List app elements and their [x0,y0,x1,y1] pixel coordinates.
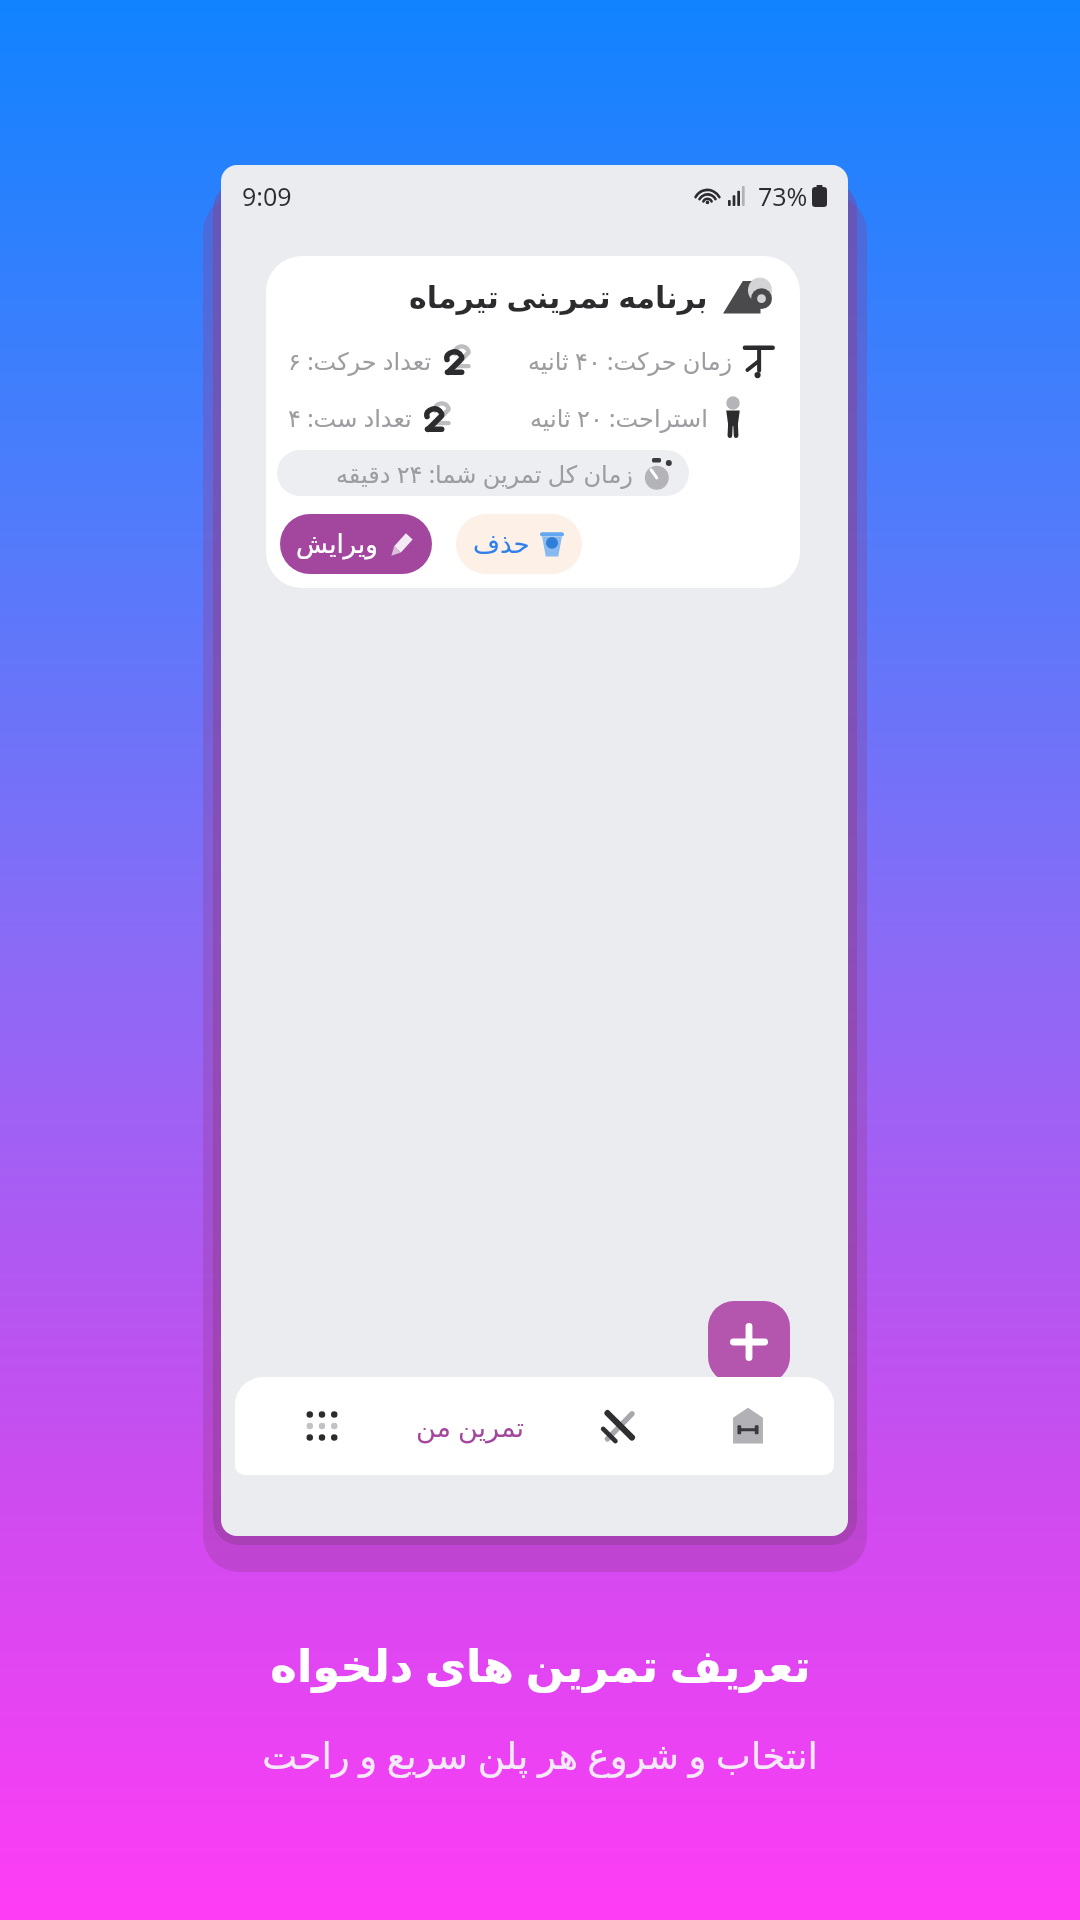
staticText: زمان حرکت: ۴۰ ثانیه [528,344,733,377]
button[interactable]: Challenges [554,1377,683,1475]
staticText: حذف [473,529,530,559]
staticText: تعریف تمرین های دلخواه [270,1634,811,1695]
staticText: 9:09 [242,179,292,213]
button[interactable]: ویرایش [280,514,432,574]
staticText: ویرایش [296,529,378,559]
button[interactable]: برنامه تمرینی تیرماه [266,256,800,588]
button[interactable]: تمرین من [386,1377,554,1475]
staticText: تمرین من [416,1408,525,1445]
button[interactable]: More [257,1377,386,1475]
staticText: 73% [758,179,808,213]
button[interactable]: Gym [683,1377,812,1475]
button[interactable]: Add workout plan [708,1301,790,1383]
staticText: انتخاب و شروع هر پلن سریع و راحت [262,1729,818,1779]
staticText: برنامه تمرینی تیرماه [409,276,708,317]
staticText: تعداد ست: ۴ [288,401,412,434]
button[interactable]: حذف [456,514,582,574]
staticText: تعداد حرکت: ۶ [288,344,432,377]
staticText: زمان کل تمرین شما: ۲۴ دقیقه [336,457,633,490]
staticText: استراحت: ۲۰ ثانیه [530,401,708,434]
